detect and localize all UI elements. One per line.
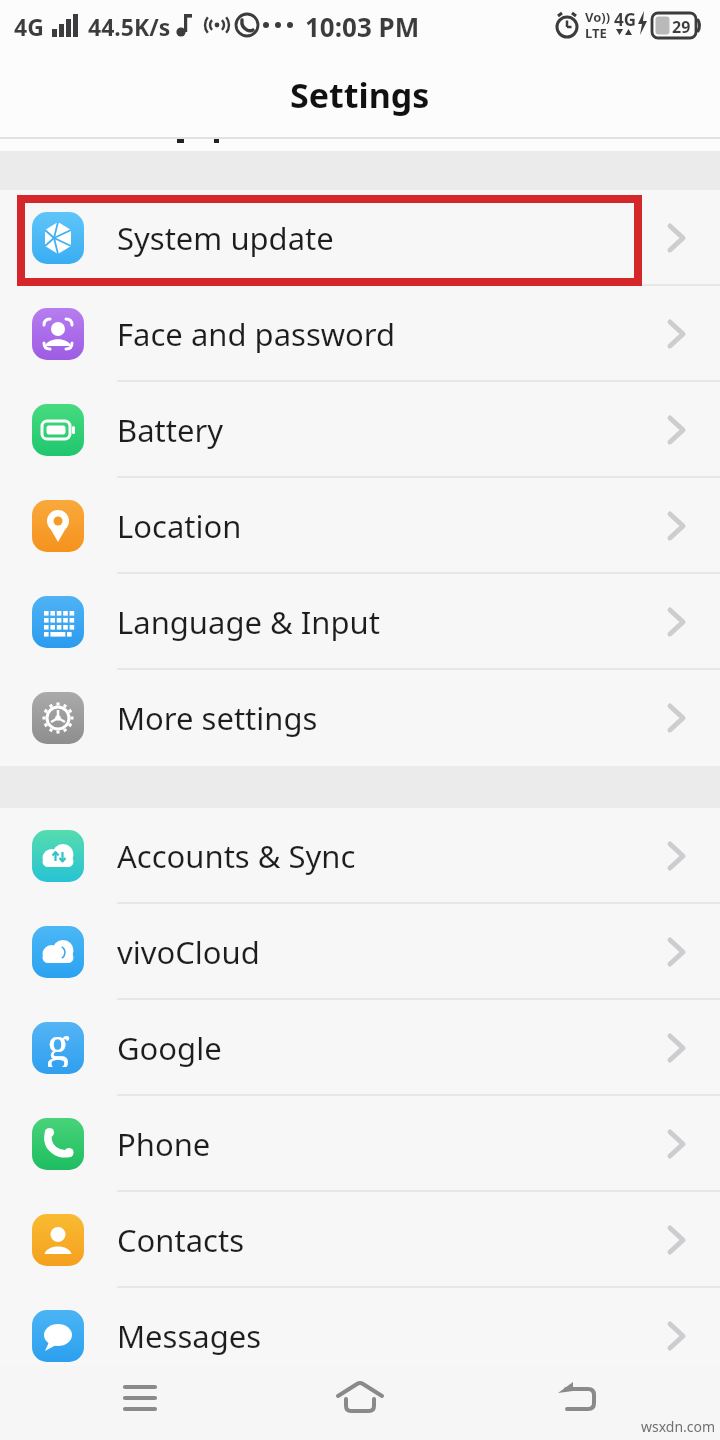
staticText: vivoCloud bbox=[117, 931, 260, 973]
staticText: 10:03 PM bbox=[305, 9, 420, 44]
staticText: 4G bbox=[614, 8, 637, 31]
button[interactable]: Contacts bbox=[0, 1192, 720, 1288]
staticText: 4G bbox=[14, 11, 44, 42]
staticText: Location bbox=[117, 505, 242, 547]
staticText: 29 bbox=[672, 16, 691, 38]
button[interactable]: vivoCloud bbox=[0, 904, 720, 1000]
staticText: Face and password bbox=[117, 313, 396, 355]
button[interactable] bbox=[556, 1378, 598, 1412]
staticText: Language & Input bbox=[117, 601, 380, 643]
button[interactable]: Messages bbox=[0, 1288, 720, 1384]
staticText: System update bbox=[117, 217, 334, 259]
staticText: Vo)) bbox=[585, 8, 611, 26]
button[interactable]: Accounts & Sync bbox=[0, 808, 720, 904]
staticText: 44.5K/s bbox=[88, 11, 171, 42]
button[interactable]: Location bbox=[0, 478, 720, 574]
staticText: Messages bbox=[117, 1315, 262, 1357]
staticText: Accounts & Sync bbox=[117, 835, 356, 877]
button[interactable]: g bbox=[0, 1000, 720, 1096]
button[interactable] bbox=[123, 1383, 157, 1413]
button[interactable]: Face and password bbox=[0, 286, 720, 382]
staticText: Google bbox=[117, 1027, 222, 1069]
staticText: Settings bbox=[290, 72, 430, 118]
staticText: Contacts bbox=[117, 1219, 245, 1261]
staticText: LTE bbox=[585, 24, 607, 42]
button[interactable]: Language & Input bbox=[0, 574, 720, 670]
staticText: Battery bbox=[117, 409, 224, 451]
button[interactable]: System update bbox=[0, 190, 720, 286]
staticText: wsxdn.com bbox=[641, 1417, 716, 1436]
button[interactable]: Battery bbox=[0, 382, 720, 478]
staticText: Phone bbox=[117, 1123, 211, 1165]
staticText: More settings bbox=[117, 697, 318, 739]
button[interactable] bbox=[337, 1379, 383, 1413]
button[interactable]: Phone bbox=[0, 1096, 720, 1192]
button[interactable]: More settings bbox=[0, 670, 720, 766]
staticText: g bbox=[47, 1022, 70, 1067]
